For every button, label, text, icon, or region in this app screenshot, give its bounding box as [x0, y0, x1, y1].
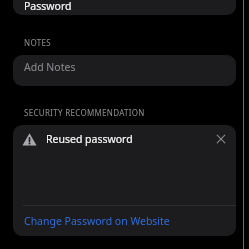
button[interactable]: Change Password on Website [13, 206, 236, 236]
button[interactable]: Add Notes [13, 55, 236, 86]
staticText: Password [24, 0, 72, 13]
staticText: NOTES [24, 37, 51, 48]
staticText: SECURITY RECOMMENDATION [24, 107, 145, 118]
staticText: Add Notes [24, 60, 76, 74]
staticText: Change Password on Website [24, 214, 170, 228]
staticText: Reused password [46, 132, 133, 146]
button[interactable]: Dismiss [212, 130, 230, 148]
button[interactable]: Password [13, 0, 236, 15]
